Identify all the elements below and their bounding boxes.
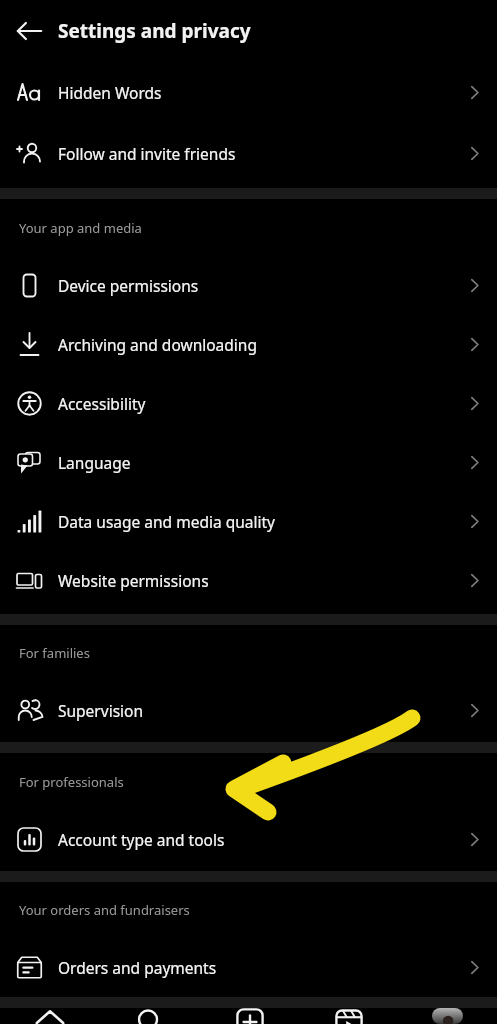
button[interactable]: Reels — [299, 1008, 398, 1024]
button[interactable]: Device permissions — [0, 256, 497, 315]
staticText: Accessibility — [58, 393, 451, 414]
staticText: For families — [19, 644, 90, 662]
button[interactable]: Account type and tools — [0, 810, 497, 869]
staticText: For professionals — [19, 773, 124, 791]
button[interactable]: Supervision — [0, 681, 497, 740]
button[interactable]: Back — [0, 0, 58, 62]
staticText: Account type and tools — [58, 829, 451, 850]
staticText: Hidden Words — [58, 82, 451, 103]
staticText: Settings and privacy — [58, 18, 251, 44]
button[interactable]: Language — [0, 433, 497, 492]
button[interactable]: Search — [100, 1008, 200, 1024]
button[interactable]: Orders and payments — [0, 938, 497, 997]
button[interactable]: Data usage and media quality — [0, 492, 497, 551]
staticText: Website permissions — [58, 570, 451, 591]
button[interactable]: Website permissions — [0, 551, 497, 610]
staticText: Follow and invite friends — [58, 143, 451, 164]
staticText: Your app and media — [19, 219, 142, 237]
staticText: Archiving and downloading — [58, 334, 451, 355]
staticText: Device permissions — [58, 275, 451, 296]
button[interactable]: Create — [200, 1008, 299, 1024]
button[interactable]: Profile — [398, 1008, 497, 1024]
button[interactable]: Archiving and downloading — [0, 315, 497, 374]
button[interactable]: Home — [0, 1008, 100, 1024]
staticText: Supervision — [58, 700, 451, 721]
staticText: Language — [58, 452, 451, 473]
button[interactable]: Hidden Words — [0, 62, 497, 123]
button[interactable]: Follow and invite friends — [0, 123, 497, 183]
staticText: Orders and payments — [58, 957, 451, 978]
staticText: Data usage and media quality — [58, 511, 451, 532]
staticText: Your orders and fundraisers — [19, 901, 190, 919]
button[interactable]: Accessibility — [0, 374, 497, 433]
